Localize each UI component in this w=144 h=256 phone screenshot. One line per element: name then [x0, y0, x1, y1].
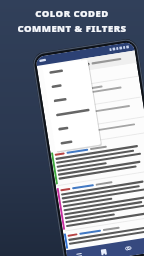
staticText: COLOR CODED: [35, 7, 109, 20]
button[interactable]: App preview screenshot: [0, 0, 144, 256]
staticText: COMMENT & FILTERS: [17, 22, 127, 35]
